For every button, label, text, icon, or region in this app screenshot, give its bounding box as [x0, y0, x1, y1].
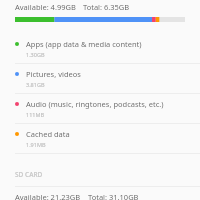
staticText: 1.30GB	[26, 51, 45, 58]
staticText: Total: 31.10GB	[88, 192, 139, 200]
staticText: Total: 6.35GB	[83, 2, 130, 12]
staticText: Pictures, videos	[26, 69, 81, 79]
button[interactable]: Apps (app data & media content)	[0, 34, 200, 63]
button[interactable]: Cached data	[0, 124, 200, 153]
staticText: Apps (app data & media content)	[26, 39, 142, 49]
staticText: Cached data	[26, 129, 70, 139]
staticText: 111MB	[26, 111, 45, 118]
staticText: 1.91MB	[26, 141, 46, 148]
staticText: SD CARD	[15, 170, 43, 179]
staticText: Audio (music, ringtones, podcasts, etc.)	[26, 99, 164, 109]
staticText: Available: 21.23GB	[15, 192, 81, 200]
staticText: 3.81GB	[26, 81, 45, 88]
button[interactable]: Pictures, videos	[0, 64, 200, 93]
staticText: Available: 4.99GB	[15, 2, 76, 12]
button[interactable]: Audio (music, ringtones, podcasts, etc.)	[0, 94, 200, 123]
